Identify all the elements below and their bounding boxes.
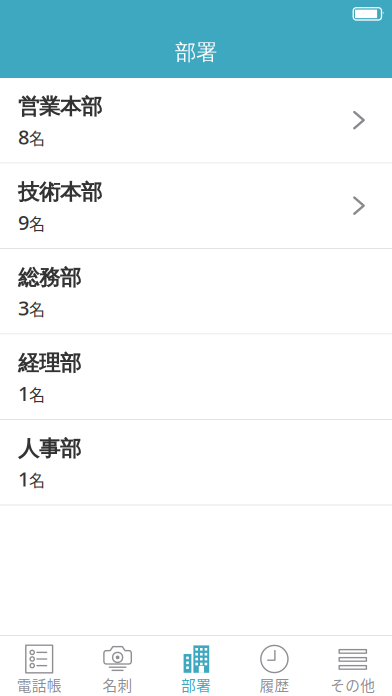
staticText: 技術本部 [18, 179, 102, 206]
button[interactable]: 経理部 [0, 334, 392, 420]
staticText: 名刺 [103, 674, 133, 695]
button[interactable]: 履歴 [235, 636, 314, 696]
button[interactable]: 電話帳 [0, 636, 78, 696]
staticText: 部署 [181, 674, 211, 695]
staticText: 営業本部 [18, 93, 102, 120]
staticText: 9 [18, 209, 29, 236]
button[interactable]: 総務部 [0, 249, 392, 334]
staticText: 3 [18, 294, 29, 321]
staticText: 人事部 [18, 435, 81, 462]
staticText: 8 [18, 123, 29, 150]
staticText: 名 [29, 468, 45, 491]
staticText: 部署 [175, 39, 217, 66]
staticText: 名 [29, 382, 45, 406]
staticText: 名 [29, 297, 45, 320]
staticText: その他 [330, 674, 375, 695]
button[interactable]: その他 [314, 636, 392, 696]
staticText: 履歴 [259, 674, 289, 695]
staticText: 経理部 [18, 350, 81, 377]
staticText: 1 [18, 380, 29, 407]
staticText: 総務部 [18, 264, 81, 291]
staticText: 電話帳 [17, 674, 62, 695]
button[interactable]: 技術本部 [0, 163, 392, 249]
staticText: 名 [29, 126, 45, 149]
button[interactable]: 営業本部 [0, 78, 392, 163]
button[interactable]: 部署 [157, 636, 235, 696]
button[interactable]: 名刺 [78, 636, 157, 696]
staticText: 名 [29, 211, 45, 235]
button[interactable]: 人事部 [0, 420, 392, 505]
staticText: 1 [18, 465, 29, 492]
